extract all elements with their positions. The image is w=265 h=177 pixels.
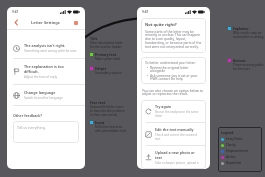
staticText: for the section header <box>90 45 123 49</box>
staticText: Switch to another language <box>24 96 63 100</box>
staticText: Free text <box>90 100 106 105</box>
staticText: Secondary caption <box>95 71 122 75</box>
staticText: Other feedback? <box>13 113 42 118</box>
staticText: Main option label <box>95 57 121 61</box>
staticText: Re-run the analysis on the same letter <box>155 110 202 118</box>
staticText: Clarity <box>226 143 236 147</box>
staticText: Repetition <box>226 161 242 165</box>
staticText: To better understand your letter: <box>145 60 196 64</box>
staticText: in their own words <box>90 113 118 117</box>
staticText: You can also choose an option below to a… <box>142 88 205 96</box>
staticText: Title <box>90 36 98 41</box>
staticText: Something went wrong with the scan <box>24 49 77 53</box>
button[interactable]: Help <box>71 18 80 27</box>
staticText: Helper <box>95 66 107 71</box>
staticText: Optional field for users <box>90 105 124 109</box>
staticText: Primary text <box>95 52 117 57</box>
staticText: for the user <box>233 67 251 71</box>
staticText: Upload a new photo or text <box>155 150 202 160</box>
staticText: Some parts of the letter may be missing … <box>145 29 202 49</box>
button[interactable]: Edit the text manually <box>141 123 206 145</box>
button[interactable]: Tell us everything. <box>13 121 79 143</box>
staticText: Adjust the tone of reply <box>24 75 57 79</box>
staticText: Why results may be <box>233 31 262 35</box>
button[interactable]: Back <box>12 18 21 27</box>
staticText: Take a sharper picture, upload a documen… <box>155 161 202 165</box>
staticText: Multi-line text area <box>95 125 123 129</box>
staticText: Not quite right? <box>145 22 177 27</box>
staticText: Review the original letter alongside <box>150 65 202 73</box>
staticText: Letter Settings <box>31 20 60 25</box>
staticText: with placeholder hint <box>95 129 126 133</box>
staticText: The analysis isn't right. <box>24 43 66 48</box>
button[interactable]: The explanation is too difficult. <box>7 59 85 84</box>
staticText: Actions <box>233 58 246 63</box>
staticText: Action <box>226 155 236 159</box>
button[interactable]: The analysis isn't right. <box>7 38 85 58</box>
staticText: Try again <box>155 104 172 109</box>
staticText: 9:41 <box>142 10 149 14</box>
staticText: Tell us everything. <box>17 125 46 130</box>
staticText: The explanation is too difficult. <box>24 64 79 74</box>
staticText: 9:41 <box>12 10 19 14</box>
staticText: Entry Point <box>226 137 243 141</box>
staticText: Input <box>95 120 105 125</box>
staticText: Check and correct the scanned text <box>155 133 202 141</box>
staticText: Short descriptive label <box>90 41 123 45</box>
staticText: Legend <box>221 130 234 135</box>
staticText: Three recovery paths <box>233 63 264 67</box>
staticText: Empowerment <box>226 149 248 153</box>
button[interactable]: Try again <box>141 100 206 122</box>
staticText: • <box>147 73 150 77</box>
staticText: Change language <box>24 90 56 95</box>
button[interactable]: Upload a new photo or text <box>141 146 206 169</box>
staticText: Ask someone you trust or your HWK contac… <box>150 73 202 81</box>
staticText: to describe the problem <box>90 109 125 113</box>
staticText: Explainer <box>233 26 249 31</box>
button[interactable]: Change language <box>7 85 85 105</box>
staticText: Edit the text manually <box>155 127 194 132</box>
staticText: incomplete or wrong <box>233 35 264 39</box>
staticText: • <box>147 65 150 69</box>
